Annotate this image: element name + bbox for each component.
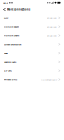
- button[interactable]: Tool: [0, 49, 64, 57]
- button[interactable]: NFC: [0, 13, 64, 22]
- button[interactable]: GP VPN: [0, 66, 64, 75]
- staticText: HONOR Share: [4, 34, 19, 37]
- staticText: Android Auto: [4, 60, 16, 63]
- staticText: NFC: [4, 16, 8, 19]
- button[interactable]: Android Auto: [0, 57, 64, 66]
- button[interactable]: HONOR Beam: [0, 22, 64, 31]
- staticText: HONOR Beam: [4, 25, 19, 28]
- button[interactable]: Back: [0, 5, 7, 13]
- staticText: Tool: [4, 52, 8, 54]
- staticText: Enabled: [47, 25, 57, 28]
- staticText: GP VPN: [4, 69, 12, 72]
- staticText: More connections: [7, 8, 30, 11]
- staticText: Enabled: [47, 16, 57, 20]
- button[interactable]: Private DNS: [0, 75, 64, 84]
- staticText: Screen projection: [4, 43, 21, 46]
- staticText: Automatically: [41, 78, 57, 81]
- staticText: Enabled: [47, 34, 57, 37]
- staticText: 09:41: [3, 1, 8, 4]
- button[interactable]: HONOR Share: [0, 31, 64, 40]
- staticText: Private DNS: [4, 78, 17, 81]
- button[interactable]: Screen projection: [0, 40, 64, 49]
